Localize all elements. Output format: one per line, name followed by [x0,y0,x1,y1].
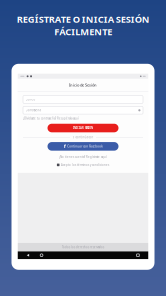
staticText: Todos los derechos reservados [62,245,104,249]
staticText: Correo [25,98,35,101]
staticText: REGÍSTRATE O INICIA SESIÓN FÁCILMENTE [16,13,149,38]
staticText: INICIAR SESIÓN [73,126,93,130]
button[interactable]: f [47,142,118,151]
staticText: Contraseña [25,108,40,112]
staticText: ¿No tienes cuenta? Regístrate aquí [59,155,107,159]
button[interactable]: Home [40,254,43,257]
button[interactable]: INICIAR SESIÓN [47,124,118,132]
button[interactable]: Recents [137,254,139,256]
staticText: Continuar con Facebook [67,145,102,148]
staticText: Inicio de Sesión [69,82,97,88]
staticText: f [64,143,66,150]
staticText: ¿Olvidaste tu contraseña? Recupérala aqu… [23,117,79,120]
staticText: Acepto los términos y condiciones [61,163,109,167]
staticText: o continúa con [72,135,93,139]
button[interactable]: Back [27,254,29,257]
